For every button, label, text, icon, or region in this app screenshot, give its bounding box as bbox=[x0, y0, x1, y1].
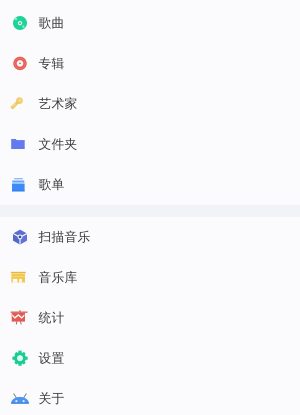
button[interactable]: 设置 bbox=[0, 338, 300, 378]
staticText: 文件夹 bbox=[38, 136, 77, 152]
button[interactable]: 歌单 bbox=[0, 164, 300, 205]
staticText: 歌单 bbox=[38, 176, 64, 193]
staticText: 歌曲 bbox=[38, 15, 64, 31]
button[interactable]: 专辑 bbox=[0, 43, 300, 84]
button[interactable]: 音乐库 bbox=[0, 257, 300, 298]
button[interactable]: 统计 bbox=[0, 298, 300, 338]
button[interactable]: 艺术家 bbox=[0, 84, 300, 124]
button[interactable]: 文件夹 bbox=[0, 124, 300, 164]
staticText: 扫描音乐 bbox=[38, 229, 90, 245]
staticText: 关于 bbox=[38, 390, 64, 407]
button[interactable]: 扫描音乐 bbox=[0, 217, 300, 257]
button[interactable]: 关于 bbox=[0, 378, 300, 415]
staticText: 统计 bbox=[38, 310, 64, 326]
staticText: 专辑 bbox=[38, 55, 64, 71]
staticText: 设置 bbox=[38, 350, 64, 366]
button[interactable]: 歌曲 bbox=[0, 3, 300, 43]
staticText: 艺术家 bbox=[38, 96, 77, 112]
staticText: 音乐库 bbox=[38, 269, 77, 285]
